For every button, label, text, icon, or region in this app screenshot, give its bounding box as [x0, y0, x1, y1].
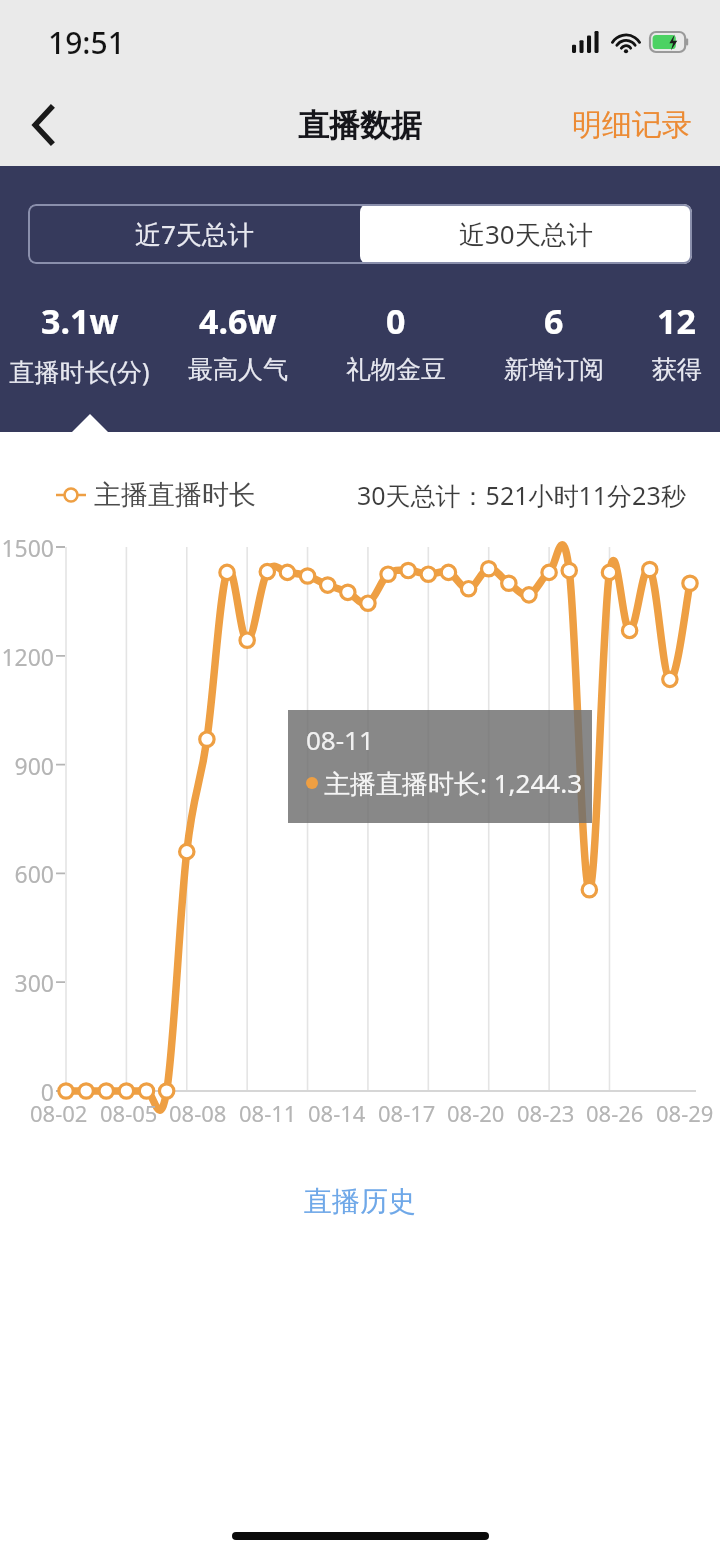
staticText: 08-20 [447, 1098, 505, 1128]
button[interactable]: 12 [633, 298, 720, 385]
staticText: 900 [0, 750, 54, 781]
staticText: 08-29 [656, 1098, 714, 1128]
staticText: 4.6w [199, 298, 277, 344]
staticText: 6 [544, 298, 564, 344]
staticText: 08-17 [378, 1098, 436, 1128]
staticText: 19:51 [48, 22, 125, 63]
button[interactable]: 明细记录 [568, 98, 696, 152]
button[interactable]: 3.1w [0, 298, 159, 388]
staticText: 直播历史 [304, 1184, 416, 1219]
staticText: 直播数据 [298, 106, 422, 145]
staticText: 08-11 [306, 722, 374, 757]
button[interactable]: 0 [317, 298, 475, 385]
staticText: 新增订阅 [504, 354, 604, 385]
staticText: 主播直播时长 [94, 478, 256, 512]
staticText: 1200 [0, 641, 54, 672]
staticText: 600 [0, 858, 54, 889]
staticText: 获得 [652, 354, 702, 385]
staticText: 近7天总计 [135, 216, 254, 252]
button[interactable]: 4.6w [159, 298, 317, 385]
button[interactable]: Back [16, 97, 72, 153]
staticText: 主播直播时长: 1,244.3 [324, 765, 583, 801]
staticText: 08-08 [169, 1098, 227, 1128]
button[interactable]: 近30天总计 [360, 204, 692, 264]
button[interactable]: 近7天总计 [28, 204, 360, 264]
staticText: 近30天总计 [459, 216, 593, 252]
staticText: 1500 [0, 532, 54, 563]
staticText: 12 [657, 298, 696, 344]
staticText: 08-02 [30, 1098, 88, 1128]
staticText: 08-23 [517, 1098, 575, 1128]
staticText: 直播时长(分) [9, 354, 150, 388]
staticText: 08-14 [308, 1098, 366, 1128]
staticText: 0 [386, 298, 406, 344]
button[interactable]: 6 [475, 298, 633, 385]
staticText: 礼物金豆 [346, 354, 446, 385]
staticText: 08-26 [586, 1098, 644, 1128]
staticText: 300 [0, 967, 54, 998]
staticText: 08-11 [239, 1098, 297, 1128]
staticText: 08-05 [100, 1098, 158, 1128]
staticText: 最高人气 [188, 354, 288, 385]
staticText: 明细记录 [572, 106, 692, 144]
staticText: 0 [0, 1076, 54, 1107]
staticText: 30天总计：521小时11分23秒 [357, 478, 686, 512]
staticText: 3.1w [41, 298, 119, 344]
button[interactable]: 直播历史 [286, 1174, 434, 1229]
